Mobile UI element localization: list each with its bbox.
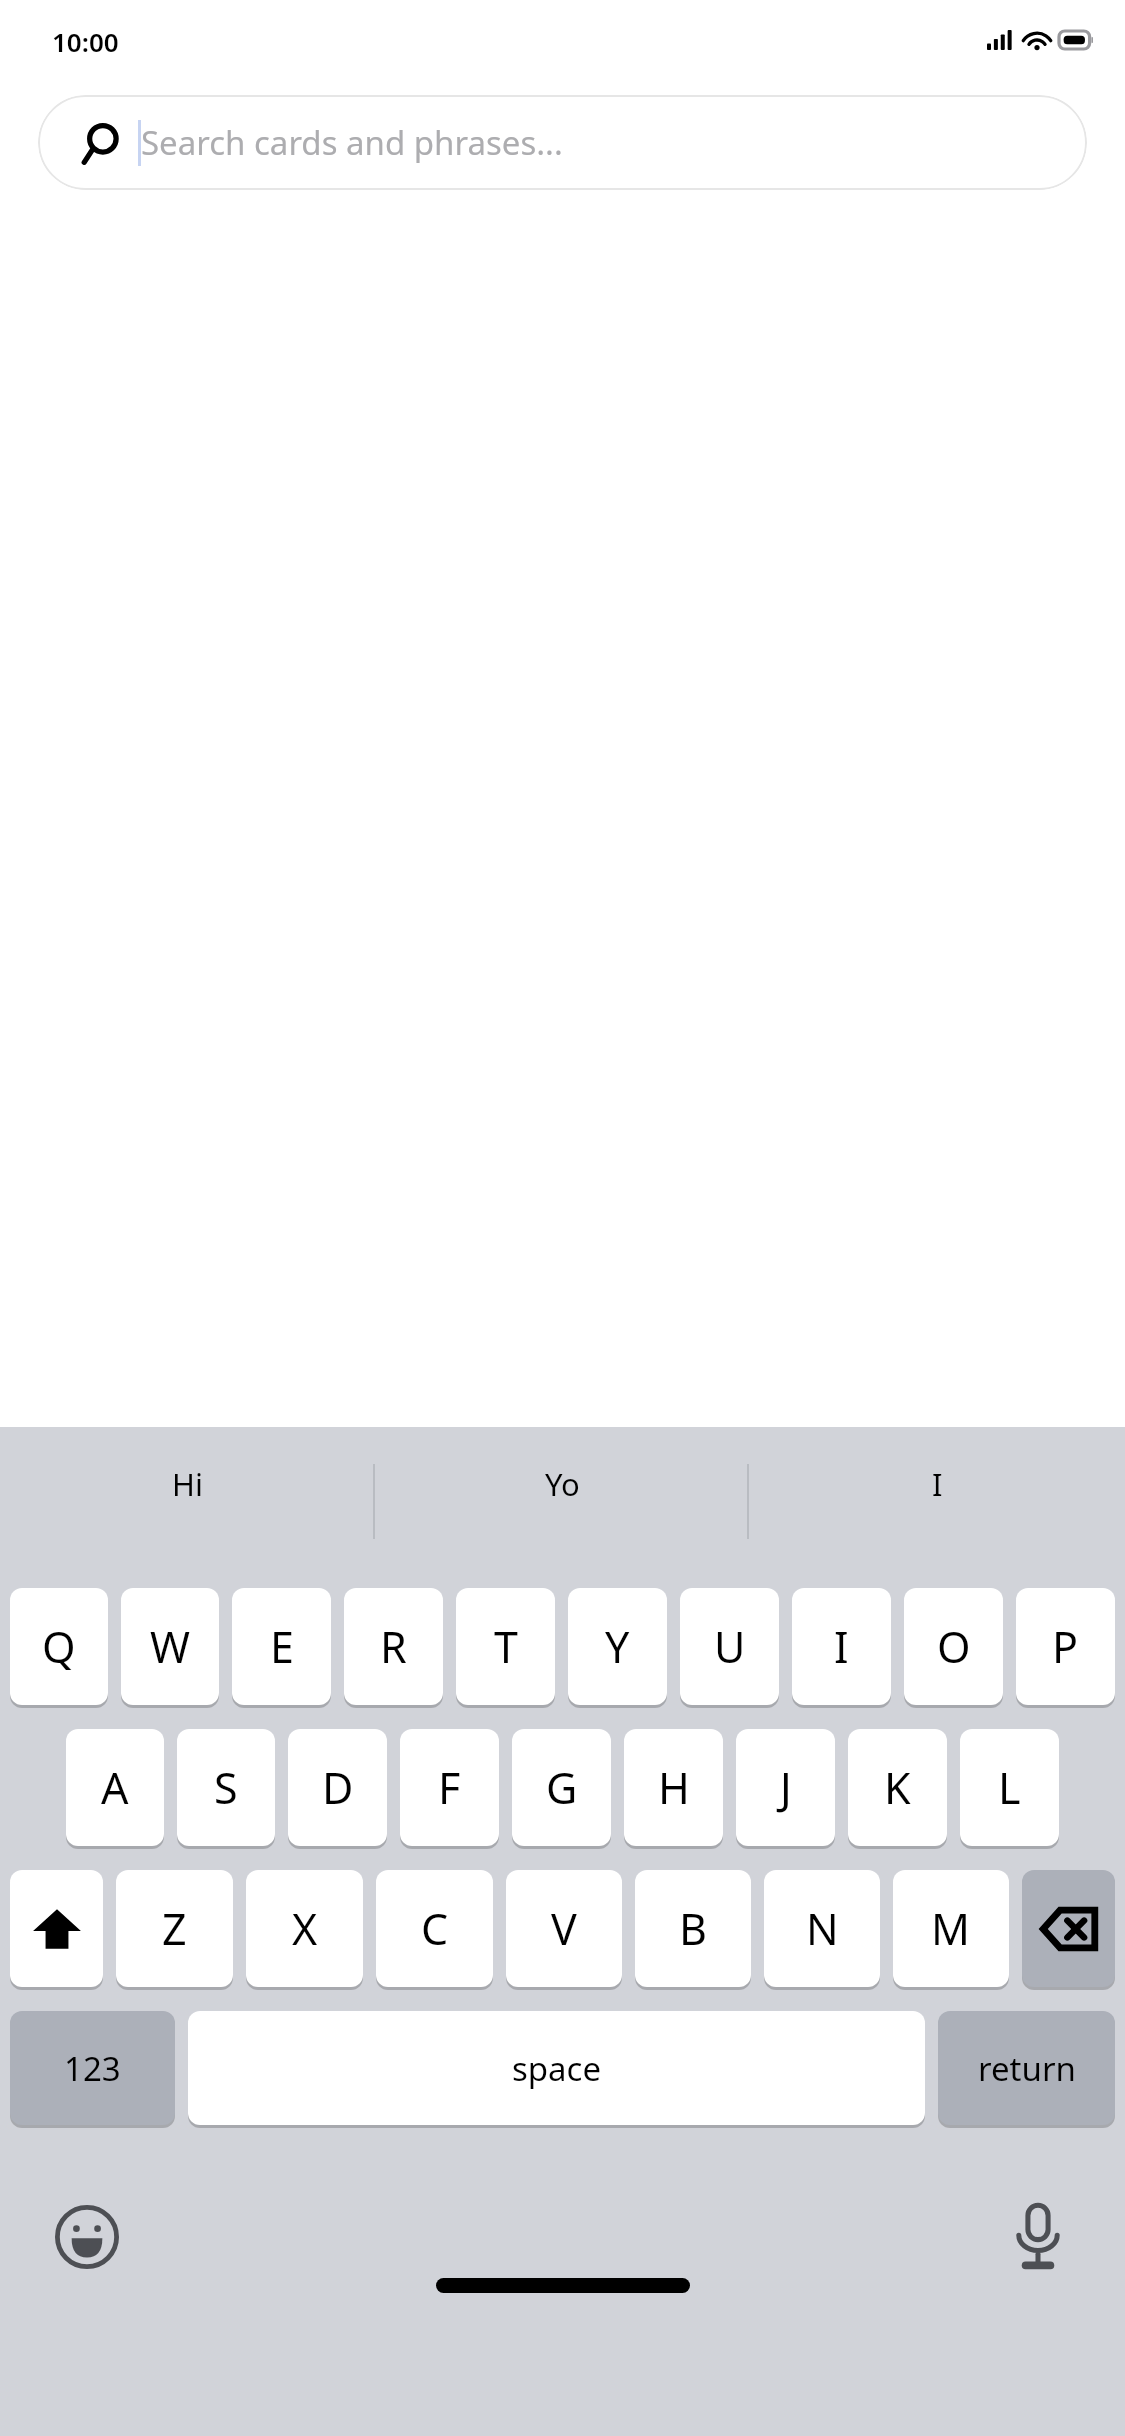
button[interactable]: Backspace — [1022, 1870, 1115, 1987]
staticText: E — [270, 1617, 294, 1676]
button[interactable]: N — [764, 1870, 880, 1987]
staticText: H — [658, 1758, 690, 1817]
staticText: A — [101, 1758, 129, 1817]
button[interactable]: U — [680, 1588, 779, 1705]
staticText: 10:00 — [52, 24, 119, 59]
button[interactable]: V — [506, 1870, 622, 1987]
staticText: Yo — [545, 1463, 580, 1505]
button[interactable]: G — [512, 1729, 611, 1846]
staticText: P — [1052, 1617, 1079, 1676]
staticText: return — [978, 2046, 1076, 2091]
staticText: M — [931, 1899, 971, 1958]
staticText: L — [998, 1758, 1021, 1817]
button[interactable]: I — [792, 1588, 891, 1705]
button[interactable]: L — [960, 1729, 1059, 1846]
button[interactable]: Yo — [375, 1427, 750, 1540]
staticText: T — [494, 1617, 518, 1676]
button[interactable]: E — [232, 1588, 331, 1705]
button[interactable]: K — [848, 1729, 947, 1846]
staticText: Search cards and phrases... — [141, 120, 563, 165]
staticText: N — [806, 1899, 839, 1958]
staticText: Q — [42, 1617, 76, 1676]
staticText: Z — [162, 1899, 187, 1958]
staticText: C — [421, 1899, 449, 1958]
staticText: X — [292, 1899, 318, 1958]
button[interactable]: Z — [116, 1870, 233, 1987]
button[interactable]: Shift — [10, 1870, 103, 1987]
staticText: 123 — [64, 2046, 121, 2091]
button[interactable]: 123 — [10, 2011, 175, 2125]
button[interactable]: H — [624, 1729, 723, 1846]
staticText: O — [937, 1617, 971, 1676]
button[interactable]: W — [121, 1588, 219, 1705]
button[interactable]: space — [188, 2011, 925, 2125]
staticText: B — [679, 1899, 707, 1958]
staticText: S — [214, 1758, 238, 1817]
button[interactable]: J — [736, 1729, 835, 1846]
staticText: D — [322, 1758, 354, 1817]
button[interactable]: P — [1016, 1588, 1115, 1705]
staticText: V — [551, 1899, 577, 1958]
button[interactable]: T — [456, 1588, 555, 1705]
staticText: R — [380, 1617, 407, 1676]
button[interactable]: X — [246, 1870, 363, 1987]
staticText: space — [512, 2046, 602, 2091]
button[interactable]: M — [893, 1870, 1009, 1987]
staticText: K — [884, 1758, 911, 1817]
staticText: Hi — [172, 1463, 203, 1505]
staticText: F — [438, 1758, 461, 1817]
button[interactable]: Hi — [0, 1427, 375, 1540]
staticText: I — [932, 1463, 943, 1505]
button[interactable]: Y — [568, 1588, 667, 1705]
button[interactable]: Q — [10, 1588, 108, 1705]
button[interactable]: return — [938, 2011, 1115, 2125]
button[interactable]: D — [288, 1729, 387, 1846]
button[interactable]: A — [66, 1729, 164, 1846]
button[interactable]: C — [376, 1870, 493, 1987]
button[interactable]: B — [635, 1870, 751, 1987]
button[interactable]: R — [344, 1588, 443, 1705]
button[interactable]: S — [177, 1729, 275, 1846]
staticText: W — [150, 1617, 190, 1676]
button[interactable]: Emoji — [52, 2202, 122, 2272]
button[interactable]: O — [904, 1588, 1003, 1705]
button[interactable]: I — [750, 1427, 1125, 1540]
staticText: I — [834, 1617, 849, 1676]
staticText: U — [714, 1617, 746, 1676]
button[interactable]: Dictation — [1003, 2202, 1073, 2272]
staticText: Y — [605, 1617, 630, 1676]
button[interactable]: F — [400, 1729, 499, 1846]
staticText: G — [546, 1758, 578, 1817]
button[interactable]: Search cards and phrases... — [38, 95, 1087, 190]
staticText: J — [780, 1758, 792, 1817]
